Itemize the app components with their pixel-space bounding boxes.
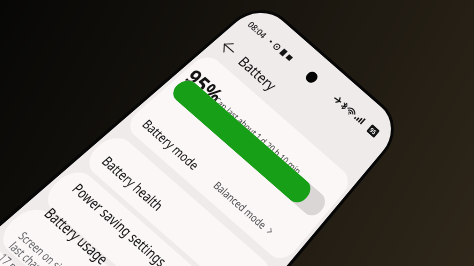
staticText: 08:04	[62, 96, 165, 150]
button[interactable]: Back	[46, 227, 128, 266]
staticText: Battery	[168, 226, 381, 266]
